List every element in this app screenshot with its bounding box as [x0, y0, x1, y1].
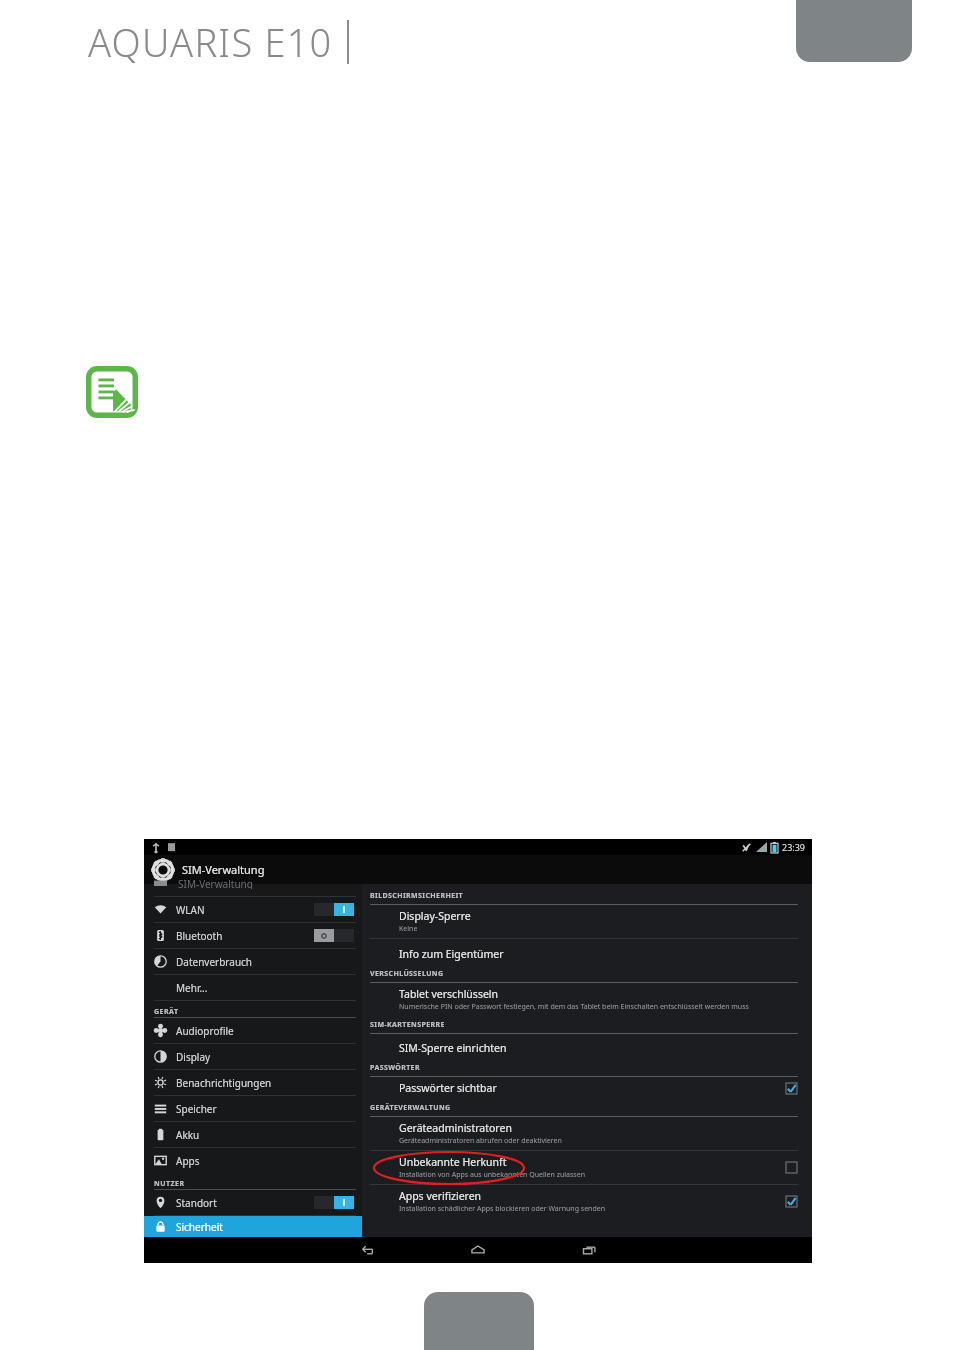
- button[interactable]: Tablet verschlüsseln: [362, 983, 812, 1016]
- staticText: Display-Sperre: [399, 909, 471, 923]
- staticText: GERÄT: [154, 1007, 179, 1017]
- button[interactable]: Apps: [144, 1148, 362, 1173]
- button[interactable]: SIM-Sperre einrichten: [362, 1037, 812, 1059]
- button[interactable]: Apps verifizieren: [362, 1185, 812, 1218]
- staticText: SIM-Sperre einrichten: [399, 1041, 507, 1055]
- button[interactable]: Unbekannte Herkunft: [362, 1151, 812, 1184]
- button[interactable]: Display-Sperre: [362, 905, 812, 938]
- button[interactable]: Back: [352, 1239, 382, 1261]
- button[interactable]: Sicherheit: [144, 1216, 362, 1237]
- staticText: Geräteadministratoren: [399, 1121, 512, 1135]
- staticText: Apps: [176, 1154, 200, 1168]
- staticText: Akku: [176, 1128, 200, 1142]
- staticText: Datenverbrauch: [176, 955, 253, 969]
- staticText: PASSWÖRTER: [370, 1063, 420, 1073]
- staticText: Installation von Apps aus unbekannten Qu…: [399, 1170, 585, 1180]
- button[interactable]: Passwörter sichtbar: [362, 1077, 812, 1099]
- button[interactable]: Audioprofile: [144, 1018, 362, 1043]
- staticText: Audioprofile: [176, 1024, 234, 1038]
- staticText: Passwörter sichtbar: [399, 1081, 497, 1095]
- button[interactable]: [314, 1196, 354, 1209]
- button[interactable]: WLAN: [144, 897, 362, 922]
- button[interactable]: Datenverbrauch: [144, 949, 362, 974]
- staticText: Unbekannte Herkunft: [399, 1155, 507, 1169]
- other: Settings: [152, 859, 174, 881]
- button[interactable]: Unbekannte Herkunft: [785, 1161, 798, 1174]
- staticText: Display: [176, 1050, 211, 1064]
- staticText: SIM-Verwaltung: [178, 877, 253, 889]
- staticText: Sicherheit: [176, 1220, 223, 1234]
- staticText: Benachrichtigungen: [176, 1076, 272, 1090]
- staticText: GERÄTEVERWALTUNG: [370, 1103, 451, 1113]
- button[interactable]: [314, 929, 354, 942]
- button[interactable]: Standort: [144, 1190, 362, 1215]
- button[interactable]: Mehr...: [144, 975, 362, 1000]
- staticText: Speicher: [176, 1102, 217, 1116]
- button[interactable]: Passwörter sichtbar: [785, 1082, 798, 1095]
- staticText: Geräteadministratoren abrufen oder deakt…: [399, 1136, 562, 1146]
- staticText: SIM-KARTENSPERRE: [370, 1020, 445, 1030]
- button[interactable]: Bluetooth: [144, 923, 362, 948]
- button[interactable]: Speicher: [144, 1096, 362, 1121]
- staticText: Tablet verschlüsseln: [399, 987, 499, 1001]
- button[interactable]: Info zum Eigentümer: [362, 943, 812, 965]
- button[interactable]: Geräteadministratoren: [362, 1117, 812, 1150]
- button[interactable]: Settings: [144, 855, 812, 884]
- other: Note: [86, 366, 138, 418]
- button[interactable]: [314, 903, 354, 916]
- staticText: NUTZER: [154, 1179, 185, 1189]
- button[interactable]: Recent apps: [574, 1239, 604, 1261]
- staticText: Numerische PIN oder Passwort festlegen, …: [399, 1002, 749, 1012]
- staticText: Apps verifizieren: [399, 1189, 482, 1203]
- button[interactable]: Benachrichtigungen: [144, 1070, 362, 1095]
- button[interactable]: Akku: [144, 1122, 362, 1147]
- staticText: Standort: [176, 1196, 217, 1210]
- staticText: 23:39: [782, 841, 806, 853]
- staticText: AQUARIS E10: [88, 16, 333, 68]
- button[interactable]: Home: [463, 1239, 493, 1261]
- staticText: BILDSCHIRMSICHERHEIT: [370, 891, 464, 901]
- staticText: VERSCHLÜSSELUNG: [370, 969, 444, 979]
- button[interactable]: Apps verifizieren: [785, 1195, 798, 1208]
- staticText: Keine: [399, 924, 418, 934]
- staticText: WLAN: [176, 903, 205, 917]
- button[interactable]: Display: [144, 1044, 362, 1069]
- staticText: Installation schädlicher Apps blockieren…: [399, 1204, 605, 1214]
- staticText: Mehr...: [176, 981, 208, 995]
- staticText: SIM-Verwaltung: [182, 862, 265, 877]
- staticText: Info zum Eigentümer: [399, 947, 504, 961]
- staticText: Bluetooth: [176, 929, 223, 943]
